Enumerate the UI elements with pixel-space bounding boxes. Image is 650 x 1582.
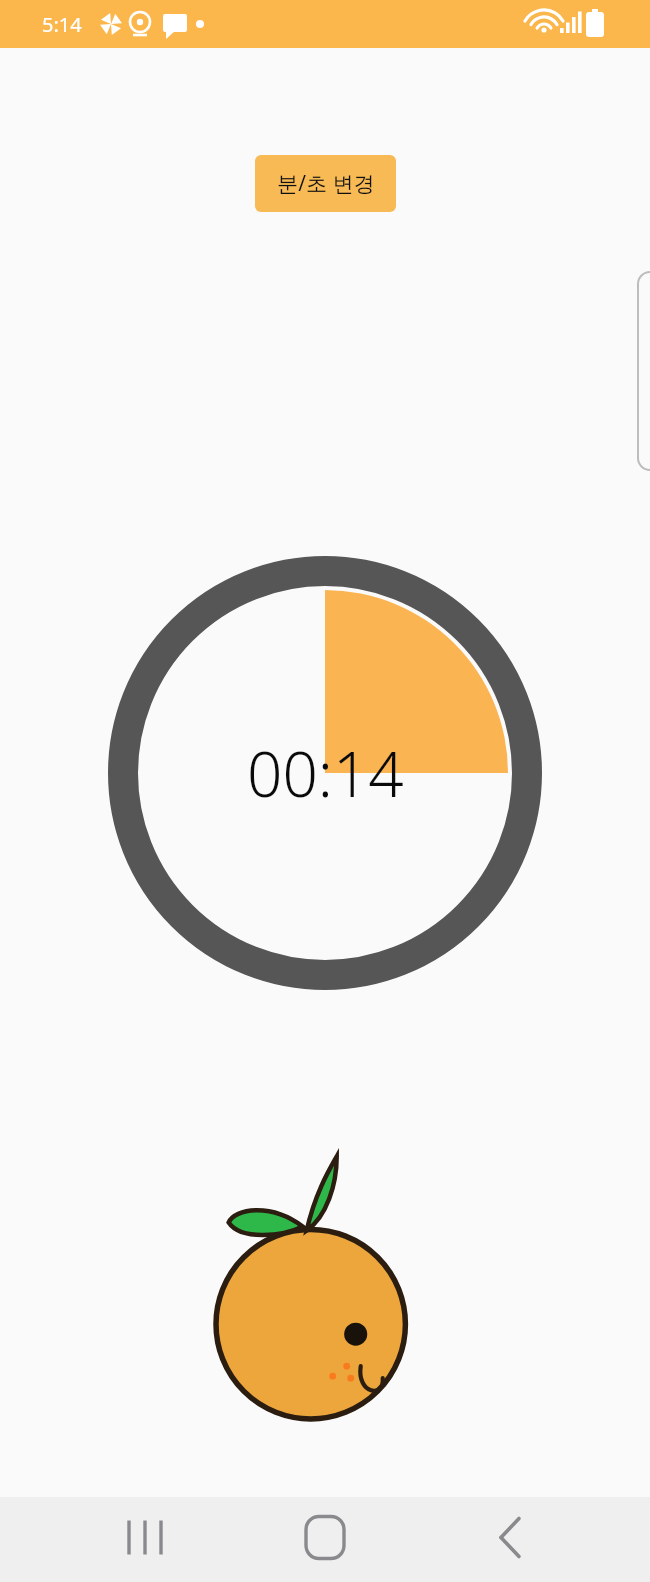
staticText: 5:14 — [42, 11, 82, 38]
staticText: 분/초 변경 — [277, 169, 375, 198]
staticText: 00:14 — [247, 731, 404, 815]
button[interactable]: Recents — [96, 1497, 194, 1582]
button[interactable]: Back — [460, 1497, 558, 1582]
button[interactable]: Home — [276, 1497, 374, 1582]
button[interactable]: 분/초 변경 — [255, 155, 396, 212]
